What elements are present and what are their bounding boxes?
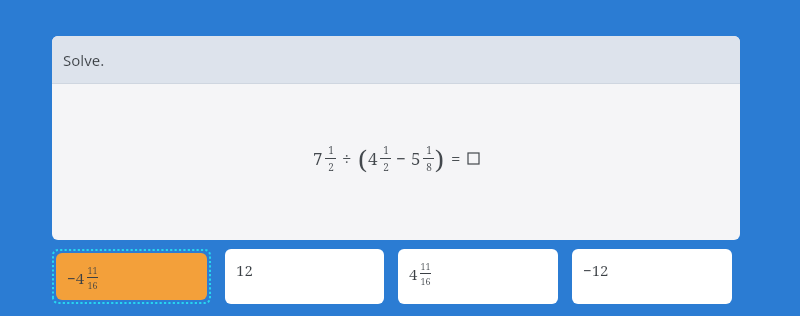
staticText: 1: [383, 143, 389, 157]
staticText: 16: [87, 279, 98, 291]
staticText: Solve.: [63, 50, 105, 70]
staticText: −4: [67, 268, 85, 288]
button[interactable]: Answer 4 and 11 sixteenths: [398, 249, 558, 304]
staticText: −: [396, 147, 406, 170]
staticText: 1: [426, 143, 432, 157]
staticText: 1: [328, 143, 334, 157]
staticText: 8: [426, 160, 432, 174]
staticText: (: [358, 141, 367, 176]
staticText: 4: [368, 147, 378, 170]
staticText: ): [435, 141, 444, 176]
button[interactable]: Answer negative 12: [572, 249, 732, 304]
staticText: 11: [420, 260, 431, 272]
staticText: 16: [420, 275, 431, 287]
staticText: 12: [236, 260, 253, 280]
staticText: 5: [411, 147, 421, 170]
staticText: 7: [313, 147, 323, 170]
staticText: −12: [583, 260, 609, 280]
button[interactable]: Answer negative 4 and 11 sixteenths: [56, 253, 207, 300]
staticText: 4: [409, 264, 418, 284]
button[interactable]: Answer 12: [225, 249, 384, 304]
staticText: =: [451, 147, 461, 170]
staticText: 11: [87, 264, 98, 276]
staticText: ÷: [342, 147, 352, 170]
staticText: 2: [328, 160, 334, 174]
staticText: 2: [383, 160, 389, 174]
